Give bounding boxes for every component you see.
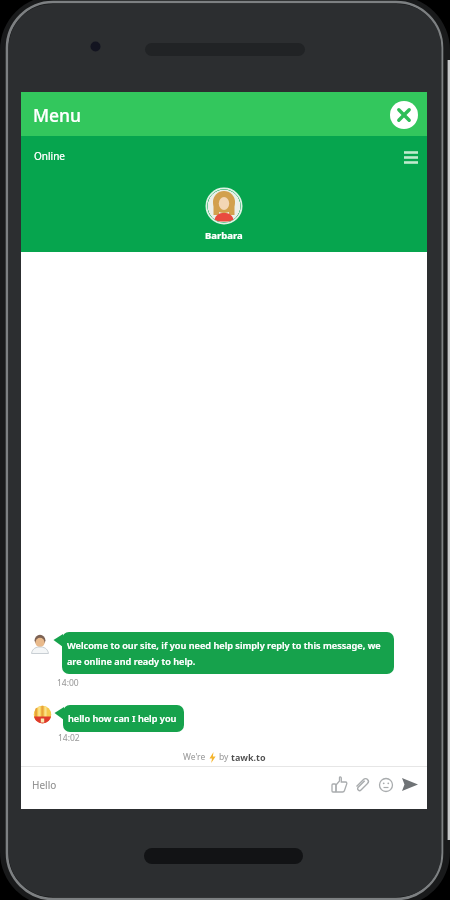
staticText: Online — [34, 149, 65, 163]
staticText: hello how can I help you — [68, 712, 177, 725]
staticText: are online and ready to help. — [67, 655, 196, 668]
button[interactable] — [374, 773, 398, 797]
button[interactable] — [390, 101, 418, 129]
staticText: by — [219, 751, 229, 763]
staticText: 14:00 — [57, 677, 79, 689]
staticText: Welcome to our site, if you need help si… — [67, 639, 381, 652]
button[interactable] — [398, 772, 422, 796]
button[interactable] — [328, 773, 352, 797]
staticText: 14:02 — [58, 732, 80, 744]
staticText: tawk.to — [231, 751, 266, 763]
staticText: Barbara — [205, 229, 243, 242]
staticText: Hello — [32, 778, 57, 792]
staticText: Menu — [33, 103, 82, 127]
button[interactable] — [397, 145, 425, 169]
button[interactable] — [351, 773, 375, 797]
staticText: We're — [183, 751, 206, 763]
